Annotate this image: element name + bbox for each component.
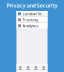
staticText: Analytics xyxy=(22,23,38,28)
button[interactable]: Tracking xyxy=(16,17,47,22)
button[interactable]: Me xyxy=(40,64,48,72)
button[interactable]: Search xyxy=(24,64,32,72)
staticText: Location Services xyxy=(22,11,44,16)
button[interactable]: Analytics xyxy=(16,23,47,28)
button[interactable]: Location Services xyxy=(16,11,47,16)
staticText: Tracking xyxy=(22,17,37,22)
staticText: Privacy and Security xyxy=(6,2,57,9)
button[interactable]: Alerts xyxy=(32,64,40,72)
button[interactable]: Home xyxy=(16,64,24,72)
